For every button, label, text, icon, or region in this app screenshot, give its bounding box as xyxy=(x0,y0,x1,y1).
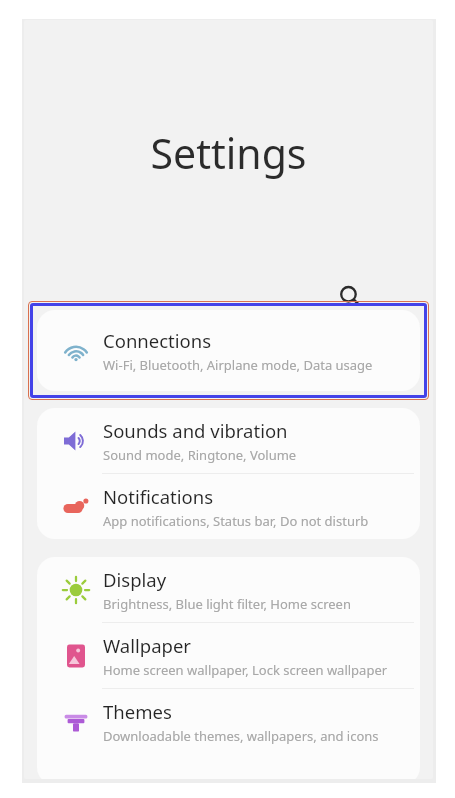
button[interactable]: Display xyxy=(37,557,420,622)
staticText: Display xyxy=(103,567,167,592)
staticText: Themes xyxy=(103,699,172,724)
staticText: Sound mode, Ringtone, Volume xyxy=(103,446,297,464)
button[interactable]: Sounds and vibration xyxy=(37,408,420,473)
staticText: App notifications, Status bar, Do not di… xyxy=(103,512,369,530)
button[interactable]: Search xyxy=(326,272,374,320)
staticText: Wi-Fi, Bluetooth, Airplane mode, Data us… xyxy=(103,356,373,374)
staticText: Notifications xyxy=(103,484,214,509)
staticText: Brightness, Blue light filter, Home scre… xyxy=(103,595,351,613)
staticText: Settings xyxy=(24,125,433,181)
button[interactable]: Notifications xyxy=(37,474,420,539)
staticText: Wallpaper xyxy=(103,633,191,658)
button[interactable]: Wallpaper xyxy=(37,623,420,688)
button[interactable]: Themes xyxy=(37,689,420,754)
staticText: Connections xyxy=(103,328,212,353)
button[interactable]: Connections xyxy=(37,310,420,391)
staticText: Home screen wallpaper, Lock screen wallp… xyxy=(103,661,388,679)
staticText: Sounds and vibration xyxy=(103,418,288,443)
staticText: Downloadable themes, wallpapers, and ico… xyxy=(103,727,379,745)
